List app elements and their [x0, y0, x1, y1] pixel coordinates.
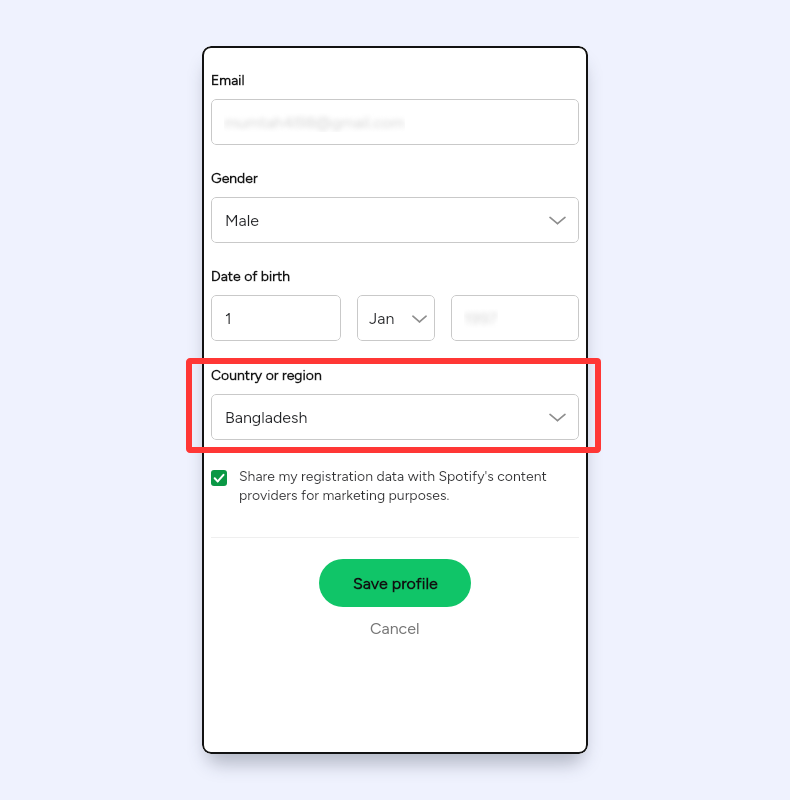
button[interactable]: 1997	[451, 295, 579, 341]
button[interactable]: Bangladesh	[211, 394, 579, 440]
button[interactable]: Male	[211, 197, 579, 243]
button[interactable]: Jan	[357, 295, 435, 341]
staticText: Male	[225, 211, 259, 230]
staticText: Save profile	[353, 574, 438, 593]
staticText: Jan	[369, 309, 395, 328]
button[interactable]: mumtah4l98@gmail.com	[211, 99, 579, 145]
button[interactable]: Cancel	[352, 613, 438, 644]
staticText: Cancel	[370, 619, 420, 638]
staticText: Gender	[211, 170, 258, 187]
staticText: 1	[225, 309, 232, 328]
staticText: Email	[211, 72, 245, 89]
button[interactable]: 1	[211, 295, 341, 341]
staticText: Bangladesh	[225, 408, 308, 427]
staticText: mumtah4l98@gmail.com	[224, 113, 405, 132]
button[interactable]: Share my registration data with Spotify'…	[211, 468, 579, 504]
staticText: Country or region	[211, 367, 322, 384]
button[interactable]: Save profile	[319, 559, 471, 607]
staticText: Date of birth	[211, 268, 291, 285]
other: Country or region highlight	[186, 358, 601, 453]
staticText: 1997	[464, 309, 498, 328]
staticText: Share my registration data with Spotify'…	[239, 468, 579, 504]
